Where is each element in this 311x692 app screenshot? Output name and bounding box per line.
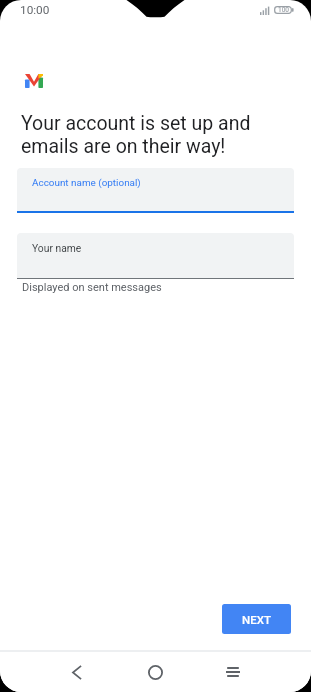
staticText: 100: [278, 6, 289, 14]
staticText: Your name: [32, 242, 82, 254]
button[interactable]: Your name: [17, 233, 294, 278]
staticText: NEXT: [242, 613, 271, 626]
button[interactable]: Home: [135, 652, 175, 692]
staticText: Account name (optional): [32, 177, 141, 189]
button[interactable]: Recent apps: [213, 652, 253, 692]
staticText: Your account is set up and emails are on…: [21, 112, 251, 158]
button[interactable]: NEXT: [222, 604, 291, 634]
button[interactable]: Account name (optional): [17, 168, 294, 211]
staticText: 10:00: [20, 3, 50, 17]
staticText: Displayed on sent messages: [22, 281, 162, 294]
button[interactable]: Back: [57, 652, 97, 692]
